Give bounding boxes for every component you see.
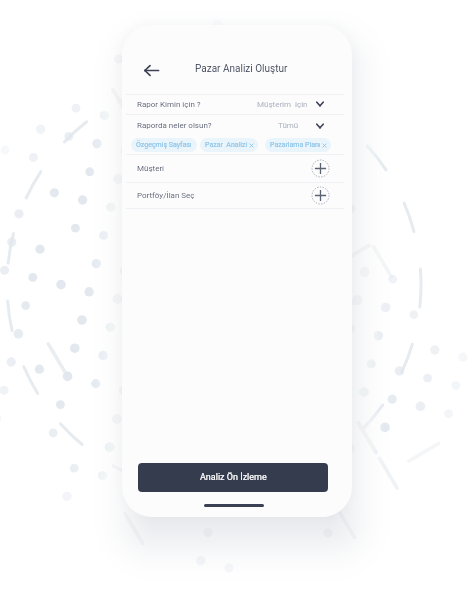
staticText: Raporda neler olsun? <box>137 121 212 130</box>
button[interactable]: Rapor Kimin için ? <box>126 94 344 114</box>
button[interactable]: Analiz Ön İzleme <box>138 463 328 492</box>
staticText: Pazar Analizi Oluştur <box>195 63 288 75</box>
staticText: Analiz Ön İzleme <box>200 472 267 483</box>
staticText: Tümü <box>278 121 299 130</box>
staticText: Müşteri <box>137 164 165 173</box>
button[interactable]: Portföy/İlan Seç <box>126 183 344 208</box>
staticText: Müşterim için <box>257 100 308 109</box>
button[interactable]: Pazar Analizi <box>200 138 258 152</box>
button[interactable]: Add <box>311 186 330 205</box>
button[interactable]: Back <box>138 57 164 83</box>
button[interactable]: Müşteri <box>126 155 344 182</box>
staticText: Rapor Kimin için ? <box>137 100 201 109</box>
staticText: Pazar Analizi <box>205 141 248 149</box>
button[interactable]: Raporda neler olsun? <box>126 115 344 136</box>
staticText: Özgeçmiş Sayfası <box>136 141 192 149</box>
button[interactable]: Özgeçmiş Sayfası <box>131 138 197 152</box>
button[interactable]: Add <box>311 159 330 178</box>
staticText: Pazarlama Planı <box>270 141 321 149</box>
button[interactable]: Pazarlama Planı <box>265 138 331 152</box>
staticText: Portföy/İlan Seç <box>137 191 195 200</box>
